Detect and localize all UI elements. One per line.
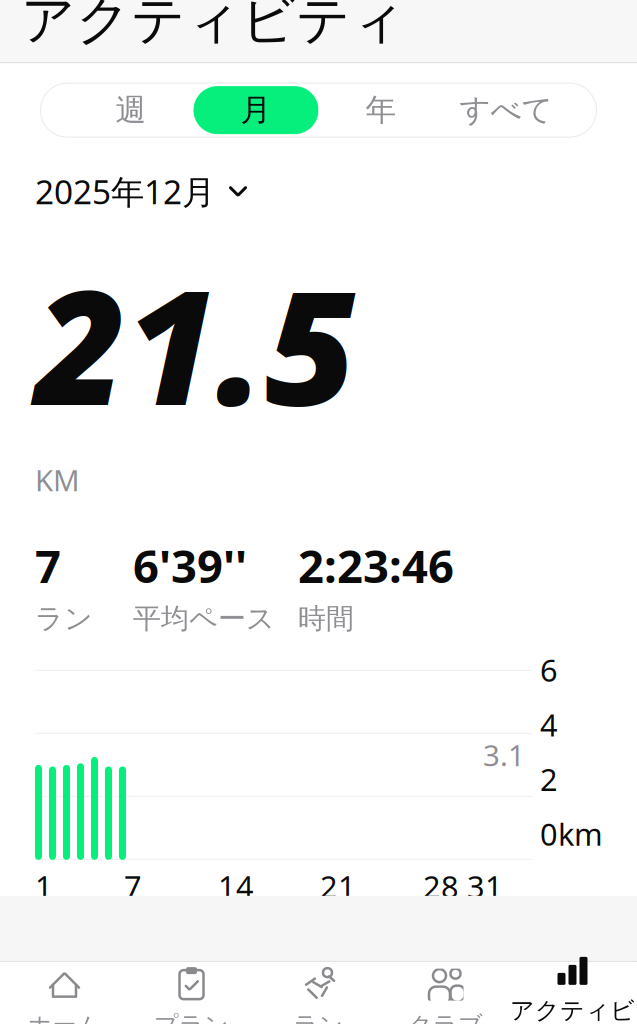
staticText: 7 [35,535,61,595]
button[interactable]: クラブ [382,962,509,1024]
staticText: 31 [467,866,503,907]
button[interactable]: ラン [255,962,382,1024]
staticText: 平均ペース [133,601,275,636]
staticText: 年 [365,91,396,129]
staticText: 21.5 [35,239,356,448]
staticText: 4 [540,704,558,745]
button[interactable]: 2025年12月 [35,165,249,217]
button[interactable]: 週 [68,86,193,134]
staticText: 28 [423,866,459,907]
button[interactable]: プラン [128,962,255,1024]
staticText: すべて [459,91,552,129]
staticText: 3.1 [483,735,525,774]
staticText: 2025年12月 [35,169,215,213]
staticText: アクティビティ [510,996,635,1024]
staticText: KM [35,460,80,499]
staticText: ホーム [27,1011,101,1024]
staticText: 2 [540,759,558,799]
staticText: 時間 [298,601,354,636]
staticText: ラン [35,601,93,636]
button[interactable]: アクティビティ [509,962,636,1024]
staticText: 月 [240,91,271,129]
staticText: 14 [218,866,254,907]
staticText: 週 [115,91,146,129]
button[interactable]: すべて [443,86,568,134]
button[interactable]: ホーム [1,962,128,1024]
staticText: アクティビティ [21,0,406,53]
staticText: ラン [293,1011,343,1024]
staticText: 1 [35,866,53,907]
button[interactable]: 年 [318,86,443,134]
staticText: 21 [320,866,356,907]
staticText: プラン [154,1011,229,1024]
staticText: クラブ [408,1011,483,1024]
staticText: 0km [540,813,603,854]
staticText: 7 [124,866,142,907]
button[interactable]: 月 [193,86,318,134]
staticText: 2:23:46 [298,535,454,595]
staticText: 6 [540,649,558,690]
staticText: 6'39'' [133,535,247,595]
